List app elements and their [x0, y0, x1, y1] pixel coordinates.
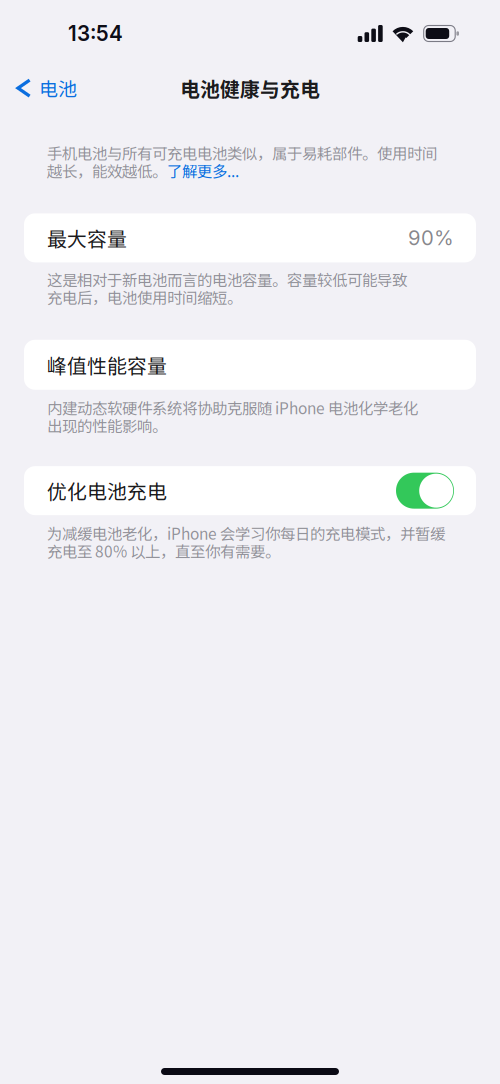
- button[interactable]: 了解更多...: [167, 162, 239, 179]
- staticText: 13:54: [68, 21, 123, 46]
- staticText: 手机电池与所有可充电电池类似，属于易耗部件。使用时间: [47, 144, 437, 162]
- staticText: 了解更多...: [167, 162, 239, 179]
- button[interactable]: 优化电池充电，已开启: [396, 473, 454, 509]
- staticText: 峰值性能容量: [47, 350, 167, 379]
- button[interactable]: 最大容量: [0, 213, 500, 262]
- button[interactable]: 返回 电池: [0, 67, 77, 109]
- staticText: 这是相对于新电池而言的电池容量。容量较低可能导致 充电后，电池使用时间缩短。: [47, 270, 407, 306]
- button[interactable]: 峰值性能容量: [0, 340, 500, 390]
- staticText: 最大容量: [47, 223, 127, 252]
- staticText: 为减缓电池老化，iPhone 会学习你每日的充电模式，并暂缓 充电至 80% 以…: [47, 524, 445, 560]
- staticText: 90%: [408, 226, 454, 250]
- staticText: 越长，能效越低。: [47, 162, 167, 179]
- staticText: 内建动态软硬件系统将协助克服随 iPhone 电池化学老化 出现的性能影响。: [47, 399, 418, 434]
- staticText: 优化电池充电: [47, 476, 167, 505]
- staticText: 电池健康与充电: [180, 74, 320, 102]
- staticText: 电池: [39, 74, 77, 102]
